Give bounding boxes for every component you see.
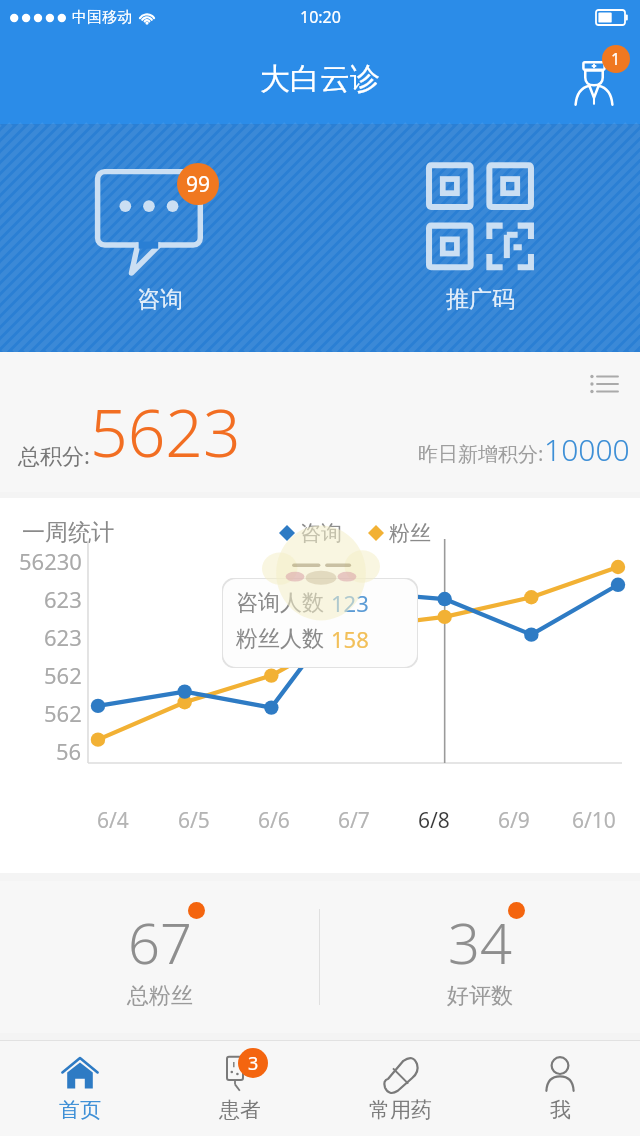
staticText: 56230	[19, 546, 82, 576]
staticText: 34	[448, 904, 512, 980]
staticText: 常用药	[369, 1097, 432, 1123]
button[interactable]: 推广码	[320, 124, 640, 352]
button[interactable]: 我	[480, 1041, 640, 1136]
staticText: 中国移动	[72, 8, 132, 27]
staticText: 首页	[59, 1097, 101, 1123]
staticText: 粉丝人数	[236, 625, 324, 653]
staticText: 6/7	[338, 806, 370, 835]
staticText: 562	[44, 660, 82, 690]
button[interactable]: 99	[0, 124, 320, 352]
staticText: 患者	[219, 1097, 261, 1123]
button[interactable]: 常用药	[320, 1041, 480, 1136]
staticText: 我	[550, 1097, 571, 1123]
staticText: 562	[44, 698, 82, 728]
button[interactable]: 首页	[0, 1041, 160, 1136]
staticText: 10:20	[300, 6, 341, 28]
staticText: 623	[44, 622, 82, 652]
staticText: 6/5	[178, 806, 210, 835]
staticText: 623	[44, 584, 82, 614]
staticText: 总粉丝	[127, 982, 193, 1010]
staticText: 咨询	[300, 520, 342, 546]
staticText: 6/9	[498, 806, 530, 835]
staticText: 粉丝	[389, 520, 431, 546]
staticText: 67	[128, 904, 192, 980]
staticText: 6/10	[572, 806, 616, 835]
staticText: 大白云诊	[260, 60, 380, 98]
button[interactable]: Doctor messages	[560, 43, 632, 115]
staticText: 好评数	[447, 982, 513, 1010]
staticText: 158	[331, 624, 369, 654]
staticText: 咨询	[137, 285, 183, 314]
staticText: 5623	[90, 386, 241, 476]
staticText: 总积分:	[18, 440, 90, 470]
staticText: 推广码	[446, 285, 515, 314]
staticText: 10000	[544, 429, 630, 470]
staticText: 昨日新增积分:	[418, 440, 544, 467]
staticText: 123	[331, 588, 369, 618]
button[interactable]: Menu	[580, 360, 628, 408]
staticText: 6/4	[97, 806, 129, 835]
staticText: 1	[611, 48, 621, 70]
staticText: 6/6	[258, 806, 290, 835]
staticText: 3	[248, 1051, 259, 1076]
staticText: 一周统计	[22, 518, 114, 547]
button[interactable]: 67	[0, 881, 319, 1033]
button[interactable]: 3	[160, 1041, 320, 1136]
button[interactable]: 34	[320, 881, 640, 1033]
staticText: 咨询人数	[236, 589, 324, 617]
staticText: 99	[186, 170, 211, 199]
staticText: 6/8	[418, 806, 450, 835]
staticText: 56	[56, 736, 82, 766]
